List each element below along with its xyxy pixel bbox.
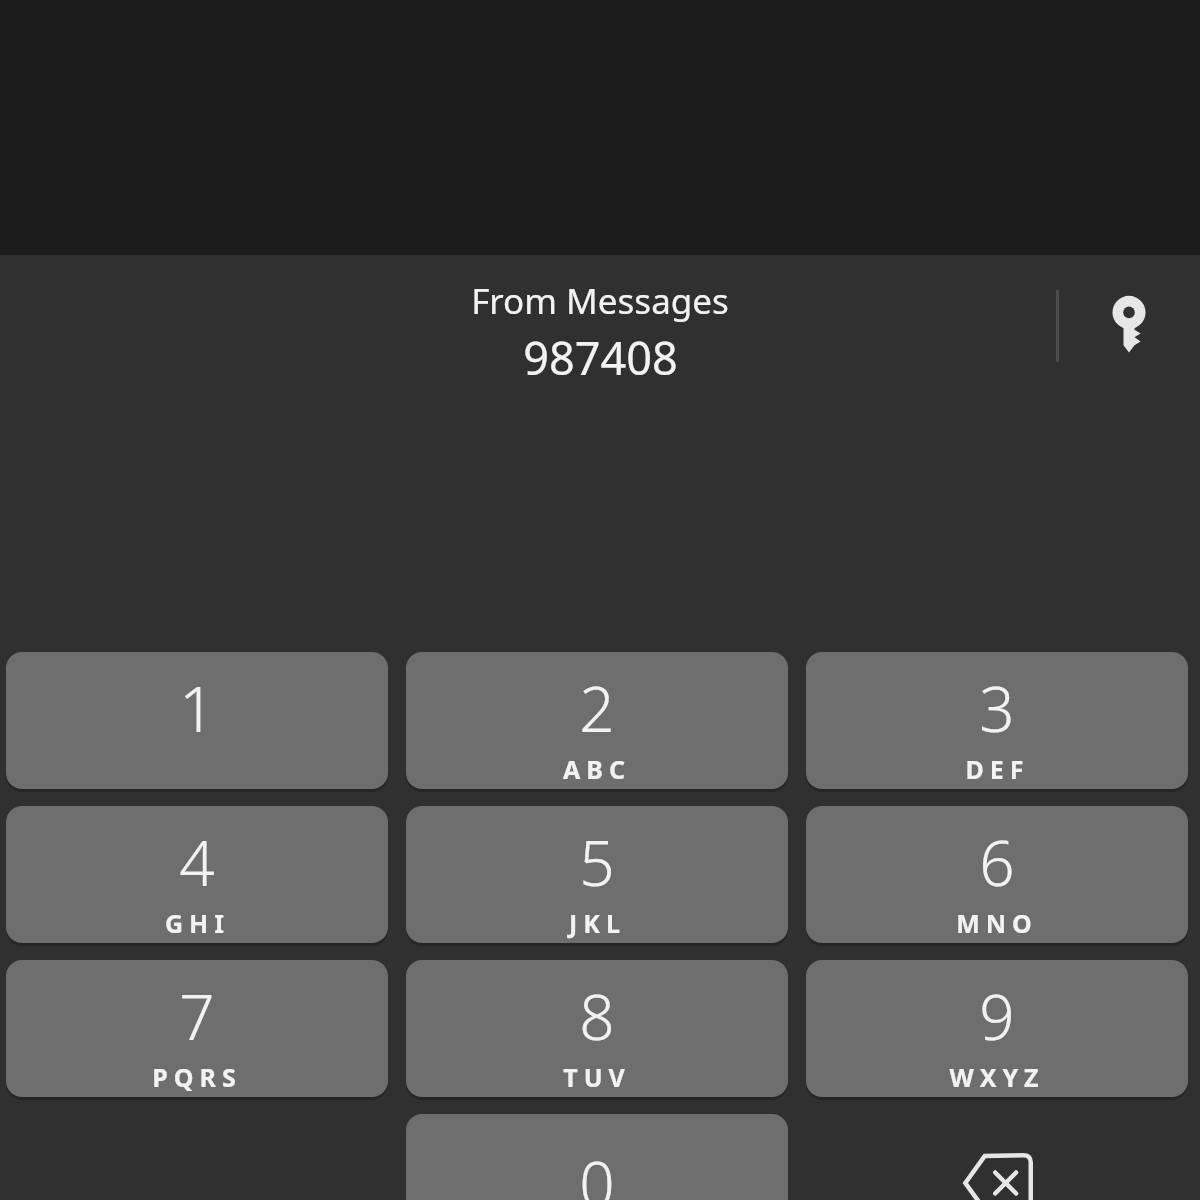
staticText: 6 [979, 820, 1015, 904]
staticText: 5 [579, 820, 615, 904]
staticText: MNO [956, 906, 1038, 940]
button[interactable]: 7 [6, 960, 388, 1097]
staticText: 0 [579, 1141, 615, 1200]
button[interactable]: 2 [406, 652, 788, 789]
staticText: WXYZ [949, 1060, 1045, 1094]
staticText: 3 [979, 666, 1015, 750]
button[interactable]: From Messages [471, 277, 729, 388]
staticText: 8 [579, 974, 615, 1058]
button[interactable]: 1 [6, 652, 388, 789]
button[interactable]: Backspace [806, 1114, 1188, 1200]
staticText: 9 [979, 974, 1015, 1058]
staticText: JKL [569, 906, 626, 940]
staticText: 1 [179, 666, 215, 750]
staticText: 2 [579, 666, 615, 750]
button[interactable]: 9 [806, 960, 1188, 1097]
button[interactable]: 6 [806, 806, 1188, 943]
button[interactable]: 3 [806, 652, 1188, 789]
staticText: GHI [165, 906, 230, 940]
staticText: ABC [563, 752, 631, 786]
staticText: TUV [563, 1060, 631, 1094]
button[interactable]: 4 [6, 806, 388, 943]
staticText: 987408 [523, 327, 678, 388]
staticText: DEF [965, 752, 1030, 786]
staticText: 4 [179, 820, 215, 904]
button[interactable]: Password manager [1088, 283, 1170, 365]
button[interactable]: 8 [406, 960, 788, 1097]
staticText: 7 [179, 974, 215, 1058]
button[interactable]: 5 [406, 806, 788, 943]
staticText: From Messages [471, 277, 729, 325]
button[interactable]: 0 [406, 1114, 788, 1200]
staticText: PQRS [152, 1060, 242, 1094]
